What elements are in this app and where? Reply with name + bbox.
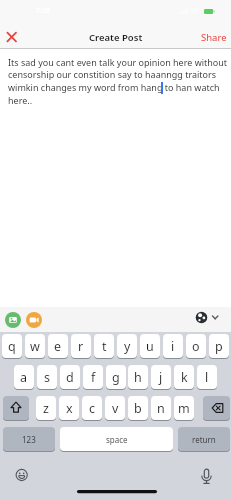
button[interactable]: j	[151, 365, 171, 390]
staticText: w	[30, 338, 40, 355]
button[interactable]: space	[60, 427, 173, 452]
button[interactable]: l	[197, 365, 217, 390]
button[interactable]	[26, 312, 42, 328]
button[interactable]: z	[36, 396, 56, 421]
staticText: Its sad you cant even talk your opinion …	[8, 56, 228, 107]
button[interactable]: b	[128, 396, 148, 421]
button[interactable]: s	[37, 365, 57, 390]
button[interactable]: p	[209, 334, 229, 359]
button[interactable]: u	[140, 334, 160, 359]
button[interactable]: w	[25, 334, 45, 359]
button[interactable]: q	[2, 334, 22, 359]
staticText: g	[112, 369, 120, 386]
staticText: r	[78, 338, 84, 355]
staticText: p	[215, 338, 223, 355]
staticText: return	[192, 434, 216, 445]
staticText: v	[112, 400, 119, 417]
staticText: f	[91, 369, 96, 386]
staticText: s	[44, 369, 50, 386]
button[interactable]: n	[151, 396, 171, 421]
button[interactable]: h	[128, 365, 148, 390]
staticText: b	[134, 400, 142, 417]
button[interactable]	[192, 309, 224, 328]
staticText: Create Post	[89, 31, 143, 44]
staticText: t	[102, 338, 107, 355]
staticText: e	[54, 338, 62, 355]
staticText: u	[146, 338, 154, 355]
button[interactable]: 123	[3, 427, 55, 452]
staticText: 123	[22, 434, 36, 445]
staticText: k	[181, 369, 188, 386]
button[interactable]: g	[106, 365, 126, 390]
staticText: z	[43, 400, 49, 417]
button[interactable]	[203, 396, 230, 421]
staticText: i	[171, 338, 175, 355]
staticText: d	[66, 369, 74, 386]
button[interactable]: o	[186, 334, 206, 359]
button[interactable]: x	[59, 396, 79, 421]
button[interactable]	[5, 312, 21, 328]
button[interactable]: v	[105, 396, 125, 421]
button[interactable]: m	[174, 396, 194, 421]
button[interactable]: i	[163, 334, 183, 359]
staticText: y	[124, 338, 131, 355]
staticText: j	[159, 369, 163, 386]
staticText: q	[8, 338, 16, 355]
staticText: n	[157, 400, 165, 417]
staticText: l	[205, 369, 209, 386]
button[interactable]: c	[82, 396, 102, 421]
staticText: h	[134, 369, 142, 386]
staticText: c	[89, 400, 96, 417]
button[interactable]	[3, 28, 21, 46]
button[interactable]: k	[174, 365, 194, 390]
staticText: o	[192, 338, 200, 355]
staticText: m	[178, 400, 190, 417]
button[interactable]	[195, 463, 219, 487]
button[interactable]	[3, 396, 29, 421]
button[interactable]: f	[83, 365, 103, 390]
button[interactable]: y	[117, 334, 137, 359]
staticText: space	[106, 434, 128, 445]
button[interactable]: return	[178, 427, 230, 452]
button[interactable]	[10, 463, 34, 487]
staticText: a	[20, 369, 28, 386]
button[interactable]: t	[94, 334, 114, 359]
button[interactable]: a	[14, 365, 34, 390]
button[interactable]: d	[60, 365, 80, 390]
staticText: x	[66, 400, 73, 417]
button[interactable]: e	[48, 334, 68, 359]
button[interactable]: r	[71, 334, 91, 359]
button[interactable]: Share	[201, 31, 227, 44]
